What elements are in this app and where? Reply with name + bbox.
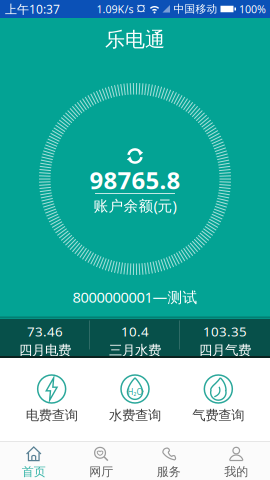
staticText: 10.4	[121, 322, 149, 340]
button[interactable]	[124, 146, 145, 165]
staticText: 103.35	[203, 322, 247, 340]
button[interactable]: 电费查询	[10, 374, 93, 423]
staticText: 水费查询	[109, 407, 161, 423]
staticText: 三月水费	[109, 342, 161, 359]
staticText: 账户余额(元)	[93, 196, 176, 215]
button[interactable]: 服务	[135, 446, 202, 479]
button[interactable]: 10.4	[90, 322, 180, 359]
button[interactable]: 网厅	[67, 446, 135, 479]
staticText: 8000000001—测试	[72, 287, 197, 307]
staticText: 四月电费	[19, 342, 71, 359]
button[interactable]: 我的	[202, 446, 270, 479]
staticText: 电费查询	[26, 407, 78, 423]
staticText: 四月气费	[199, 342, 251, 359]
staticText: 乐电通	[105, 27, 165, 52]
button[interactable]: 103.35	[180, 322, 270, 359]
button[interactable]: 气费查询	[177, 374, 260, 423]
staticText: 首页	[22, 464, 46, 479]
staticText: 网厅	[89, 464, 113, 479]
button[interactable]: H₂O	[93, 374, 177, 423]
staticText: 上午10:37	[5, 1, 60, 17]
button[interactable]: 首页	[0, 446, 67, 479]
staticText: H₂O	[127, 387, 142, 397]
staticText: 我的	[224, 464, 248, 479]
staticText: 中国移动	[173, 2, 217, 15]
staticText: 1.09K/s	[96, 2, 133, 16]
button[interactable]: 73.46	[0, 322, 90, 359]
staticText: 73.46	[27, 322, 63, 340]
staticText: 100%	[239, 2, 266, 16]
staticText: 服务	[157, 464, 181, 479]
staticText: 气费查询	[192, 407, 244, 423]
staticText: 98765.8	[89, 164, 180, 196]
